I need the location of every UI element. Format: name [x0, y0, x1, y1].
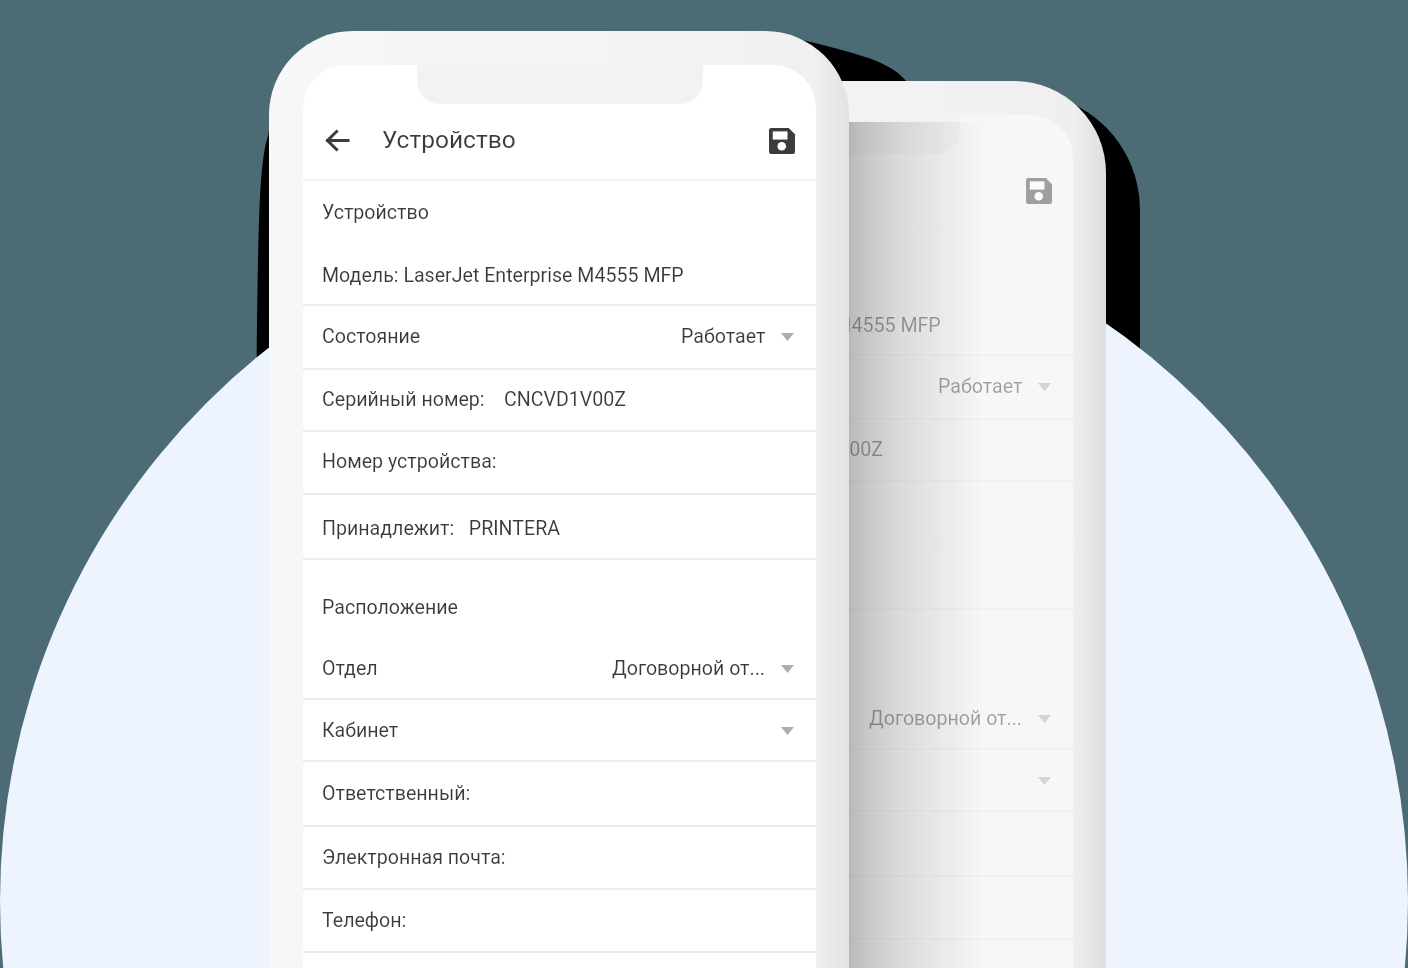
button[interactable]: Электронная почта: — [560, 876, 1073, 939]
button[interactable]: Телефон: — [303, 889, 816, 952]
button[interactable]: Электронная почта: — [303, 826, 816, 889]
button[interactable]: Расположение — [303, 563, 816, 651]
staticText: Кабинет — [322, 719, 399, 742]
staticText: Ответственный: — [322, 782, 471, 805]
button[interactable]: Устройство — [303, 179, 816, 246]
button[interactable]: Телефон: — [560, 939, 1073, 968]
button[interactable]: Состояние — [303, 304, 816, 368]
button[interactable]: Отдел — [560, 692, 1073, 744]
staticText: Устройство — [382, 125, 516, 154]
button[interactable]: Устройство — [560, 229, 1073, 296]
staticText: Номер устройства: — [322, 450, 497, 473]
button[interactable]: Save — [759, 118, 805, 164]
staticText: Принадлежит: PRINTERA — [322, 517, 561, 540]
button[interactable]: Принадлежит: PRINTERA — [560, 546, 1073, 610]
staticText: Телефон: — [322, 909, 407, 932]
button[interactable]: Отдел — [303, 642, 816, 694]
staticText: Расположение — [579, 646, 716, 669]
staticText: Отдел — [322, 657, 378, 680]
button[interactable]: Номер устройства: — [560, 480, 1073, 542]
staticText: Договорной от... — [612, 657, 766, 680]
staticText: Серийный номер: CNCVD1V00Z — [322, 388, 627, 411]
button[interactable]: Серийный номер: CNCVD1V00Z — [303, 368, 816, 431]
button[interactable]: Ответственный: — [560, 812, 1073, 875]
staticText: Модель: LaserJet Enterprise M4555 MFP — [579, 314, 941, 337]
button[interactable]: Номер устройства: — [303, 430, 816, 492]
staticText: Работает — [681, 325, 766, 348]
button[interactable]: Принадлежит: PRINTERA — [303, 496, 816, 560]
button[interactable]: Расположение — [560, 613, 1073, 701]
button[interactable]: Модель: LaserJet Enterprise M4555 MFP — [303, 246, 816, 304]
staticText: Расположение — [322, 596, 459, 619]
button[interactable]: Back — [314, 117, 360, 163]
button[interactable]: Серийный номер: CNCVD1V00Z — [560, 418, 1073, 481]
button[interactable]: Кабинет — [303, 699, 816, 762]
staticText: Устройство — [322, 201, 429, 224]
staticText: Устройство — [579, 251, 686, 274]
button[interactable]: Кабинет — [560, 749, 1073, 812]
staticText: Договорной от... — [869, 707, 1023, 730]
button[interactable]: Модель: LaserJet Enterprise M4555 MFP — [560, 296, 1073, 354]
staticText: Серийный номер: CNCVD1V00Z — [579, 438, 884, 461]
staticText: Состояние — [322, 325, 421, 348]
button[interactable]: Ответственный: — [303, 762, 816, 825]
staticText: Работает — [938, 375, 1023, 398]
button[interactable]: Save — [1016, 168, 1062, 214]
staticText: Электронная почта: — [322, 846, 506, 869]
staticText: Устройство — [639, 175, 773, 204]
button[interactable]: Состояние — [560, 354, 1073, 418]
staticText: Модель: LaserJet Enterprise M4555 MFP — [322, 264, 684, 287]
staticText: Состояние — [579, 375, 678, 398]
